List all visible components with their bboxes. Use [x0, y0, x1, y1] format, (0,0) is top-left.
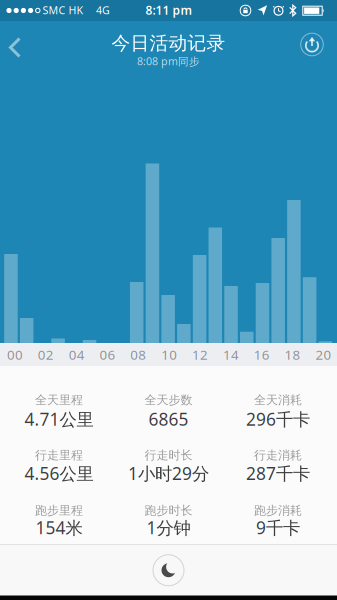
staticText: 跑步里程	[35, 503, 83, 518]
staticText: 8:11 pm	[145, 2, 192, 18]
staticText: 14	[223, 346, 239, 363]
staticText: 全天消耗	[254, 393, 302, 407]
staticText: 04	[69, 346, 85, 363]
staticText: 9千卡	[256, 516, 300, 539]
staticText: 6865	[148, 407, 188, 430]
staticText: 20	[315, 346, 331, 363]
button[interactable]: Sync	[300, 32, 324, 56]
staticText: 全天里程	[35, 393, 83, 407]
button[interactable]: Back	[0, 21, 32, 74]
staticText: 02	[38, 346, 54, 363]
staticText: 4.71公里	[24, 407, 93, 430]
staticText: 16	[254, 346, 270, 363]
staticText: 06	[99, 346, 115, 363]
staticText: 今日活动记录	[111, 32, 225, 55]
staticText: 1分钟	[146, 516, 190, 539]
staticText: 行走消耗	[254, 448, 302, 463]
staticText: 08	[130, 346, 146, 363]
staticText: 10	[161, 346, 177, 363]
staticText: 8:08 pm同步	[137, 54, 200, 68]
staticText: 全天步数	[144, 393, 192, 407]
button[interactable]: Sleep mode	[152, 554, 185, 587]
staticText: SMC HK	[42, 3, 83, 17]
staticText: 跑步时长	[144, 503, 192, 518]
staticText: 296千卡	[246, 407, 310, 430]
staticText: 4.56公里	[24, 462, 93, 485]
staticText: 18	[285, 346, 301, 363]
staticText: 287千卡	[246, 462, 310, 485]
staticText: 1小时29分	[128, 462, 209, 485]
staticText: 4G	[96, 3, 110, 17]
staticText: 154米	[35, 516, 82, 539]
staticText: 行走时长	[144, 448, 192, 463]
staticText: 行走里程	[35, 448, 83, 463]
staticText: 00	[7, 346, 23, 363]
staticText: 12	[192, 346, 208, 363]
staticText: 跑步消耗	[254, 503, 302, 518]
